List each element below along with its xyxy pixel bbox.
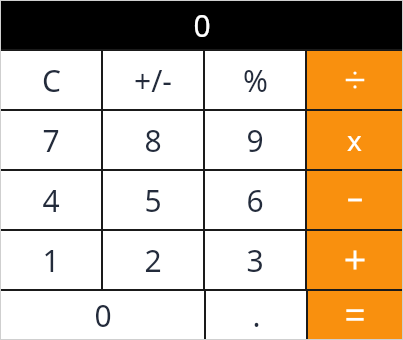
- staticText: 3: [246, 240, 264, 281]
- staticText: 6: [246, 180, 264, 221]
- button[interactable]: Equals: [308, 291, 402, 339]
- button[interactable]: 1: [1, 231, 101, 289]
- button[interactable]: Multiply: [307, 111, 402, 169]
- button[interactable]: C: [1, 51, 101, 109]
- staticText: 0: [94, 295, 112, 336]
- staticText: 4: [42, 180, 60, 221]
- button[interactable]: 8: [103, 111, 203, 169]
- button[interactable]: Add: [307, 231, 402, 289]
- staticText: 1: [42, 240, 60, 281]
- button[interactable]: +/-: [103, 51, 203, 109]
- button[interactable]: .: [206, 291, 306, 339]
- button[interactable]: %: [205, 51, 305, 109]
- staticText: 9: [246, 120, 264, 161]
- button[interactable]: 4: [1, 171, 101, 229]
- staticText: 2: [144, 240, 162, 281]
- staticText: .: [252, 295, 261, 336]
- button[interactable]: 9: [205, 111, 305, 169]
- staticText: C: [42, 60, 61, 101]
- button[interactable]: Subtract: [307, 171, 402, 229]
- staticText: +/-: [134, 60, 172, 101]
- button[interactable]: 6: [205, 171, 305, 229]
- button[interactable]: 3: [205, 231, 305, 289]
- staticText: %: [243, 60, 268, 101]
- button[interactable]: 7: [1, 111, 101, 169]
- staticText: 0: [193, 5, 211, 46]
- button[interactable]: 0: [1, 291, 204, 339]
- staticText: 8: [144, 120, 162, 161]
- button[interactable]: Divide: [307, 51, 402, 109]
- button[interactable]: 2: [103, 231, 203, 289]
- staticText: 5: [144, 180, 162, 221]
- staticText: x: [347, 121, 362, 159]
- button[interactable]: 5: [103, 171, 203, 229]
- staticText: 7: [42, 120, 60, 161]
